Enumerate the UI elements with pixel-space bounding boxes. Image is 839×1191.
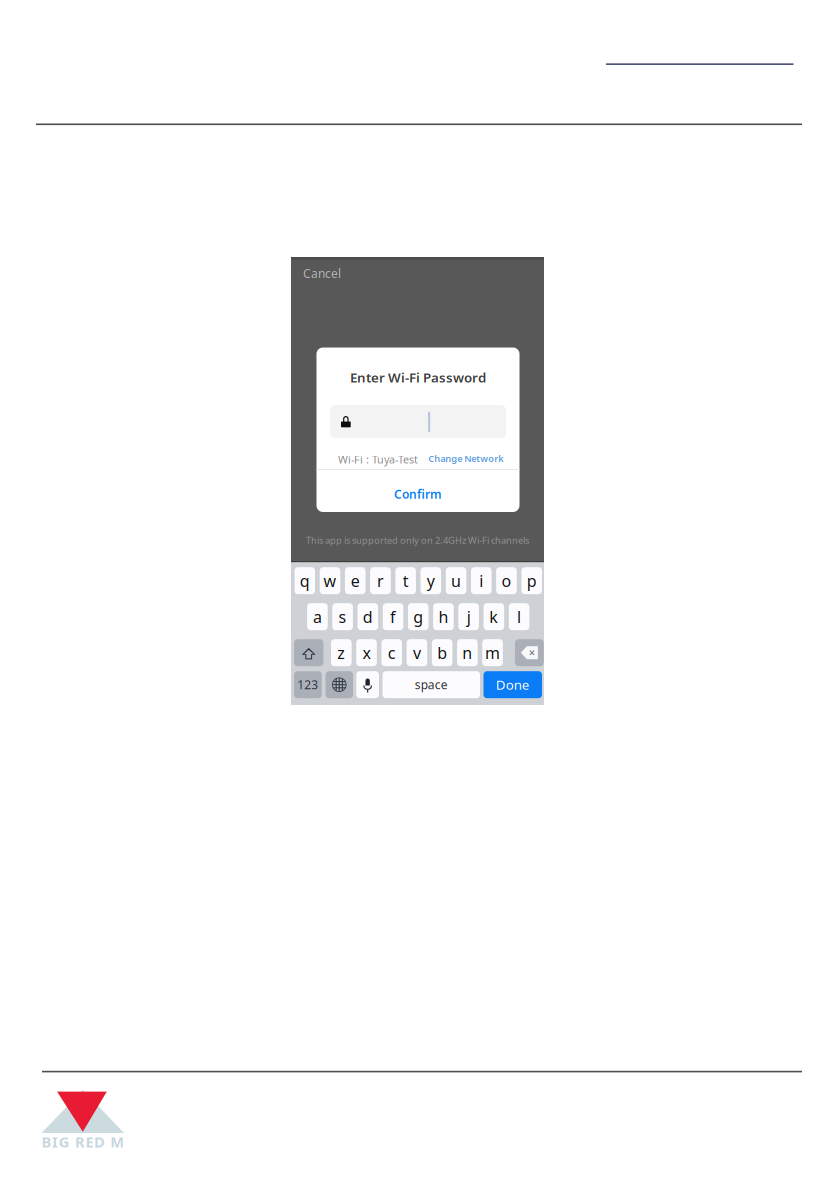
staticText: j [467,606,471,627]
button[interactable]: y [421,567,441,594]
button[interactable]: Done [483,671,542,698]
button[interactable]: t [395,567,416,594]
button[interactable]: Delete [515,639,544,666]
staticText: space [415,677,448,693]
staticText: I [52,1132,58,1151]
staticText: Done [496,676,530,693]
staticText: q [300,570,310,591]
button[interactable]: f [383,603,403,630]
staticText: Wi-Fi : Tuya-Test [338,452,418,466]
button[interactable]: s [332,603,353,630]
staticText: t [403,570,409,591]
button[interactable]: e [345,567,365,594]
button[interactable]: Shift [294,639,323,666]
button[interactable]: i [471,567,492,594]
staticText: y [427,570,435,591]
button[interactable]: p [521,567,542,594]
button[interactable]: q [294,567,315,594]
staticText: w [323,570,336,591]
staticText: E [85,1132,93,1151]
button[interactable]: w [320,567,340,594]
staticText [70,1132,74,1151]
button[interactable]: r [370,567,391,594]
staticText: This app is supported only on 2.4GHz Wi-… [306,534,529,546]
button[interactable]: Confirm [316,473,519,515]
staticText: s [339,606,347,627]
button[interactable]: v [407,639,427,666]
staticText: B [41,1132,51,1151]
staticText: f [390,606,396,627]
button[interactable]: b [432,639,452,666]
staticText [106,1132,110,1151]
button[interactable]: Cancel [298,260,346,286]
staticText: o [501,570,511,591]
button[interactable]: n [457,639,478,666]
staticText: Cancel [303,265,341,281]
button[interactable]: 123 [294,671,322,698]
button[interactable]: o [496,567,517,594]
button[interactable]: Link [606,63,793,65]
button[interactable]: k [484,603,504,630]
staticText: R [75,1132,85,1151]
staticText: x [362,642,370,663]
staticText: Confirm [394,486,442,502]
button[interactable]: z [331,639,352,666]
staticText: Enter Wi-Fi Password [350,368,486,386]
staticText: Change Network [428,452,503,464]
staticText: e [351,570,360,591]
staticText: u [451,570,461,591]
button[interactable]: Dictation [356,671,379,698]
staticText: n [462,642,472,663]
button[interactable]: u [446,567,466,594]
staticText: M [110,1132,124,1151]
button[interactable]: m [482,639,503,666]
staticText: d [363,606,373,627]
button[interactable]: j [458,603,479,630]
button[interactable]: d [357,603,378,630]
button[interactable]: Switch keyboard [325,671,353,698]
staticText: z [337,642,345,663]
button[interactable]: x [356,639,377,666]
staticText: m [485,642,500,663]
staticText: k [489,606,498,627]
button[interactable]: space [382,671,480,698]
staticText: r [377,570,384,591]
button[interactable]: Change Network [426,452,505,464]
staticText: D [94,1132,105,1151]
button[interactable]: a [307,603,328,630]
staticText: G [59,1132,70,1151]
staticText: a [313,606,322,627]
staticText: h [438,606,448,627]
staticText: l [517,606,521,627]
staticText: v [413,642,421,663]
staticText: b [437,642,447,663]
staticText: c [388,642,396,663]
button[interactable]: g [408,603,428,630]
staticText: i [479,570,483,591]
button[interactable]: l [509,603,529,630]
staticText: 123 [297,677,318,693]
button[interactable]: c [381,639,402,666]
staticText: p [527,570,537,591]
button[interactable]: h [433,603,454,630]
staticText: g [413,606,423,627]
